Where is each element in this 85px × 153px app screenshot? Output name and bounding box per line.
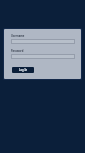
staticText: Log In [19,68,28,72]
button[interactable]: Log In [12,67,34,73]
staticText: Password [11,49,24,53]
button[interactable]: Username input [11,39,75,44]
button[interactable]: Password input [11,54,75,59]
staticText: Username [11,34,25,38]
